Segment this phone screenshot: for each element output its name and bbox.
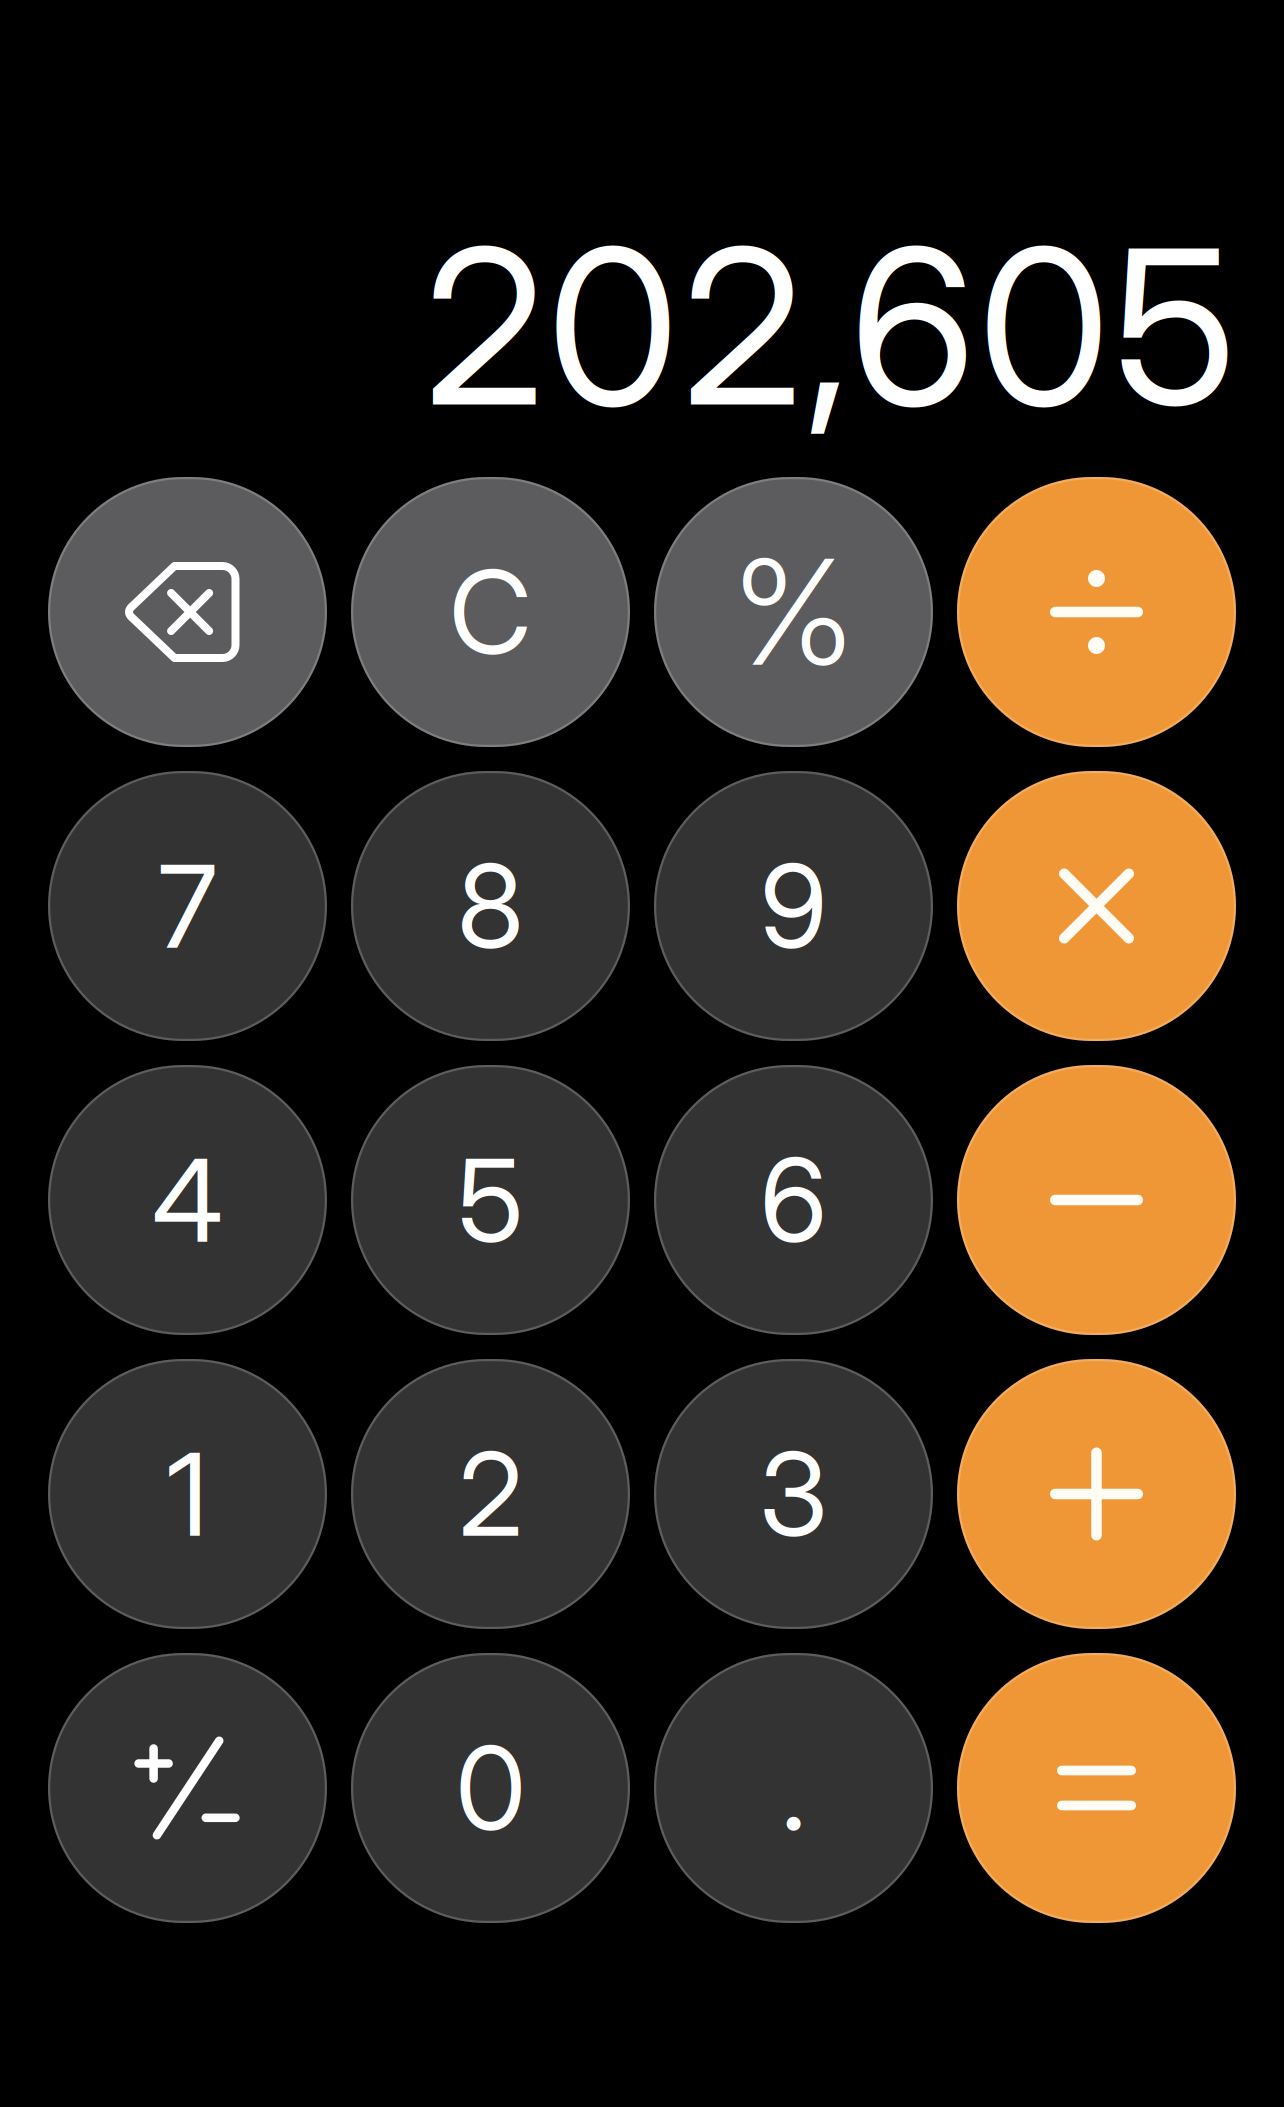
button[interactable]: 0 <box>351 1653 630 1923</box>
staticText: 7 <box>158 837 217 975</box>
staticText: 2 <box>458 1425 522 1563</box>
staticText: 8 <box>457 837 524 975</box>
button[interactable]: 5 <box>351 1065 630 1335</box>
staticText: 5 <box>457 1131 523 1269</box>
button[interactable]: 1 <box>48 1359 327 1629</box>
staticText: 4 <box>152 1131 223 1269</box>
button[interactable]: 4 <box>48 1065 327 1335</box>
button[interactable]: Subtract <box>957 1065 1236 1335</box>
button[interactable]: Plus minus <box>48 1653 327 1923</box>
staticText: 9 <box>760 837 827 975</box>
button[interactable]: Decimal point <box>654 1653 933 1923</box>
button[interactable]: Clear <box>351 477 630 747</box>
staticText: . <box>781 1719 806 1857</box>
staticText: 0 <box>455 1719 525 1857</box>
button[interactable]: Multiply <box>957 771 1236 1041</box>
button[interactable]: Delete <box>48 477 327 747</box>
staticText: 3 <box>759 1425 828 1563</box>
staticText: % <box>733 524 853 700</box>
staticText: C <box>449 543 532 681</box>
button[interactable]: Percent <box>654 477 933 747</box>
button[interactable]: Equals <box>957 1653 1236 1923</box>
staticText: 6 <box>760 1131 827 1269</box>
button[interactable]: Add <box>957 1359 1236 1629</box>
button[interactable]: Divide <box>957 477 1236 747</box>
button[interactable]: 7 <box>48 771 327 1041</box>
staticText: 1 <box>166 1425 208 1563</box>
button[interactable]: 8 <box>351 771 630 1041</box>
button[interactable]: 6 <box>654 1065 933 1335</box>
button[interactable]: 2 <box>351 1359 630 1629</box>
button[interactable]: 3 <box>654 1359 933 1629</box>
staticText: 202,605 <box>424 197 1237 456</box>
button[interactable]: 9 <box>654 771 933 1041</box>
